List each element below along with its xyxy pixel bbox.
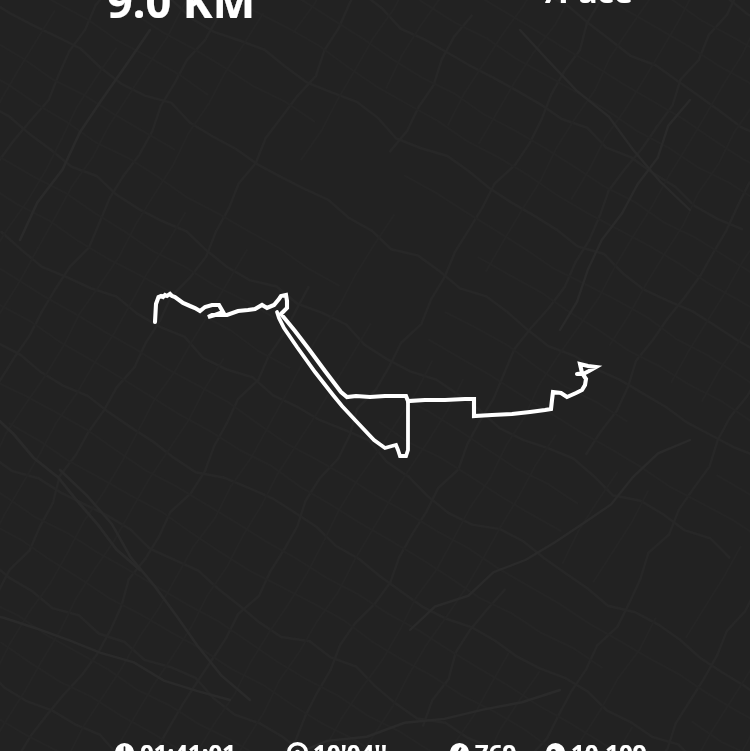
button[interactable]: 10,109 steps [546, 736, 647, 751]
button[interactable]: 9.0 KM [107, 0, 256, 31]
staticText: /Pace [545, 0, 633, 13]
staticText: 9.0 KM [107, 0, 256, 31]
button[interactable]: Average pace 10 minutes 4 seconds per ki… [288, 736, 388, 751]
staticText: 769 [475, 736, 517, 751]
button[interactable]: Duration 1 hour 41 minutes 1 second [115, 736, 236, 751]
staticText: 01:41:01 [140, 736, 236, 751]
staticText: 10'04'' [313, 736, 388, 751]
staticText: 10,109 [571, 736, 647, 751]
button[interactable]: Route map [0, 0, 750, 751]
button[interactable]: 769 kilocalories burned [450, 736, 517, 751]
button[interactable]: /Pace [545, 0, 633, 13]
